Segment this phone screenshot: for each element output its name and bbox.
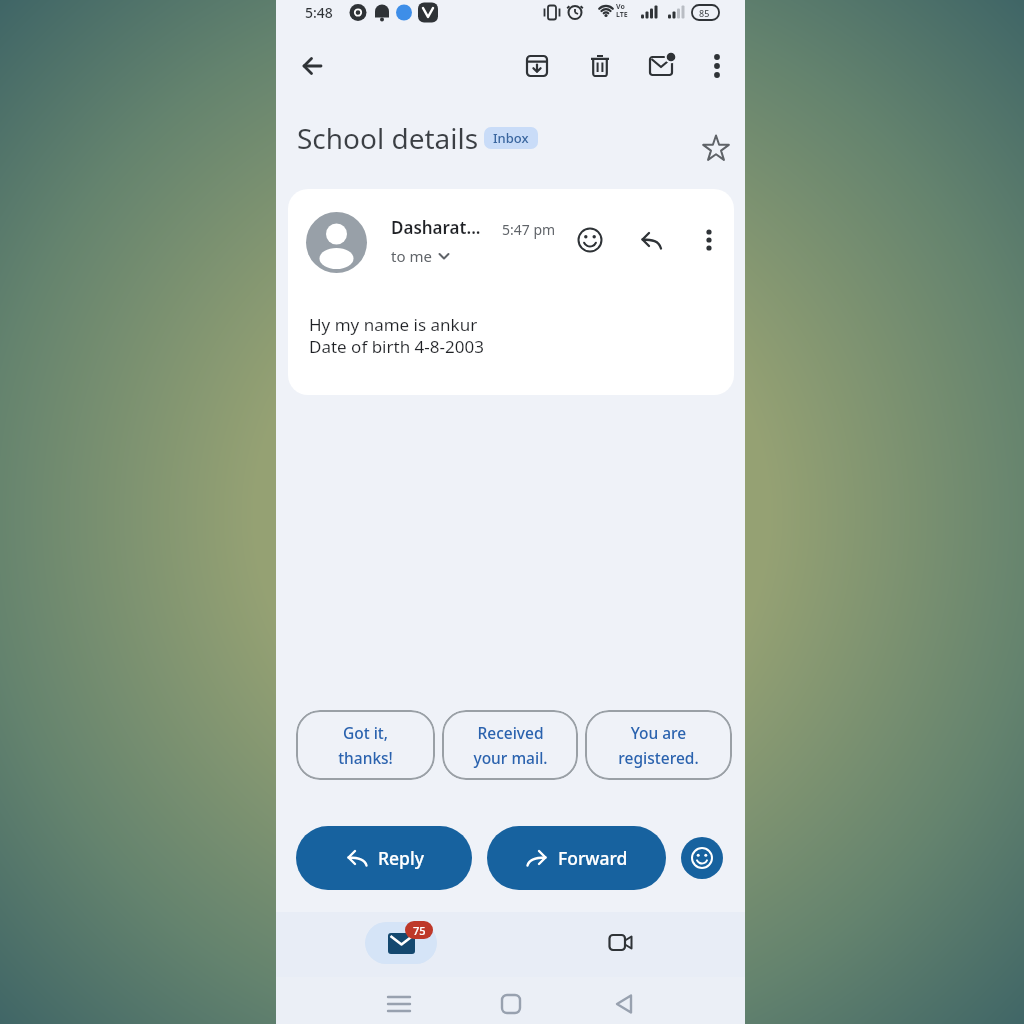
staticText: 5:48 xyxy=(305,3,333,22)
button[interactable]: Forward xyxy=(487,826,666,890)
button[interactable]: Inbox xyxy=(484,127,538,149)
staticText: Forward xyxy=(558,846,628,870)
button[interactable]: You are registered. xyxy=(585,710,732,780)
staticText: School details xyxy=(297,119,479,157)
staticText: You are registered. xyxy=(618,722,699,769)
button[interactable] xyxy=(695,227,723,255)
staticText: Vo xyxy=(616,2,625,12)
button[interactable] xyxy=(585,922,657,964)
staticText: Reply xyxy=(378,846,424,870)
button[interactable] xyxy=(576,226,604,254)
button[interactable] xyxy=(365,922,437,964)
staticText: Received your mail. xyxy=(473,722,548,769)
button[interactable]: to me xyxy=(391,246,450,266)
button[interactable] xyxy=(638,227,666,255)
staticText: 85 xyxy=(699,7,710,19)
staticText: Got it, thanks! xyxy=(338,722,393,769)
button[interactable]: Got it, thanks! xyxy=(296,710,435,780)
button[interactable] xyxy=(642,46,682,86)
button[interactable] xyxy=(292,46,332,86)
staticText: Inbox xyxy=(493,129,529,147)
button[interactable]: Reply xyxy=(296,826,472,890)
staticText: LTE xyxy=(616,10,628,20)
button[interactable] xyxy=(697,46,737,86)
button[interactable] xyxy=(681,837,723,879)
staticText: 75 xyxy=(413,923,426,938)
staticText: Hy my name is ankur Date of birth 4-8-20… xyxy=(309,313,484,358)
button[interactable] xyxy=(580,46,620,86)
button[interactable] xyxy=(517,46,557,86)
button[interactable] xyxy=(696,128,736,168)
button[interactable]: Received your mail. xyxy=(442,710,578,780)
staticText: Dasharat... xyxy=(391,216,481,239)
staticText: 5:47 pm xyxy=(502,220,556,239)
staticText: to me xyxy=(391,246,432,266)
